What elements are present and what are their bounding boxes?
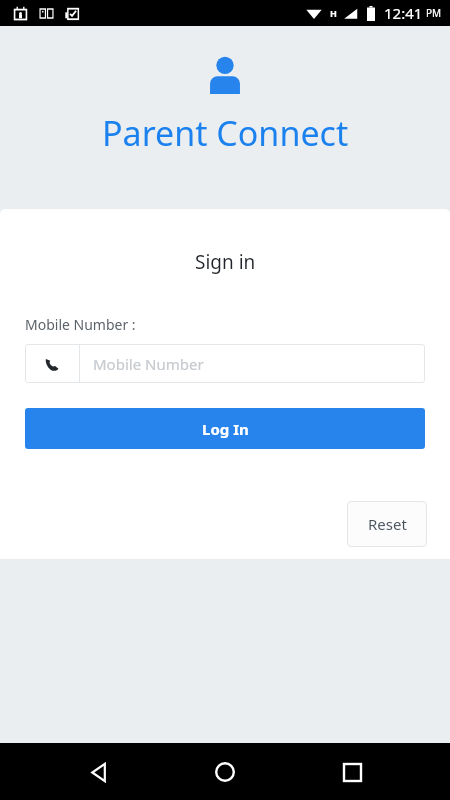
button[interactable]: Home (197, 744, 253, 800)
button[interactable]: Reset (347, 501, 427, 547)
button[interactable]: Recent apps (324, 744, 380, 800)
staticText: H (330, 7, 337, 19)
staticText: Sign in (195, 249, 256, 275)
button[interactable]: Mobile Number (25, 344, 425, 383)
staticText: PM (426, 6, 442, 20)
staticText: Log In (202, 419, 249, 439)
staticText: Mobile Number : (25, 315, 136, 334)
button[interactable]: Log In (25, 408, 425, 449)
button[interactable]: Back (71, 744, 127, 800)
staticText: Parent Connect (102, 110, 349, 156)
staticText: Mobile Number (93, 354, 204, 374)
staticText: Reset (368, 514, 407, 534)
staticText: 12:41 (384, 3, 423, 23)
